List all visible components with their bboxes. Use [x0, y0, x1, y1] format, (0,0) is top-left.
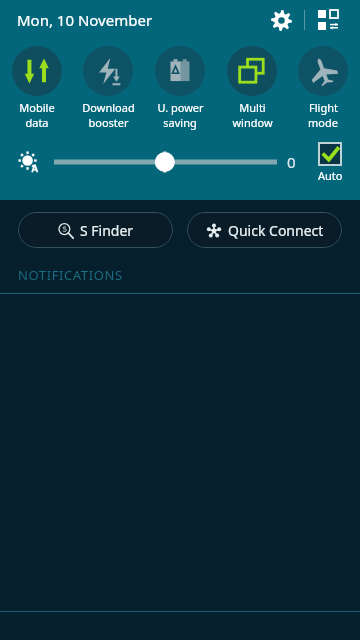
button[interactable]: Multi — [217, 44, 287, 130]
staticText: Mobile — [19, 100, 55, 115]
button[interactable]: U. power — [145, 44, 215, 130]
staticText: window — [232, 115, 273, 130]
button[interactable]: Download — [73, 44, 143, 130]
staticText: Flight — [309, 100, 338, 115]
button[interactable]: S Finder — [18, 212, 173, 248]
staticText: Download — [82, 100, 135, 115]
staticText: U. power — [157, 100, 204, 115]
staticText: Multi — [239, 100, 266, 115]
staticText: saving — [163, 115, 197, 130]
staticText: Quick Connect — [228, 221, 324, 240]
staticText: 0 — [287, 152, 296, 172]
button[interactable]: Mobile — [2, 44, 72, 130]
button[interactable]: Flight — [288, 44, 358, 130]
staticText: NOTIFICATIONS — [18, 266, 123, 284]
button[interactable]: Quick Connect — [187, 212, 342, 248]
staticText: S Finder — [80, 221, 134, 240]
button[interactable]: Settings — [263, 2, 299, 38]
staticText: mode — [308, 115, 338, 130]
staticText: data — [25, 115, 49, 130]
button[interactable]: Auto — [308, 142, 352, 183]
staticText: Auto — [318, 168, 343, 183]
button[interactable]: Auto brightness — [12, 145, 46, 179]
button[interactable]: Edit quick settings — [310, 2, 346, 38]
button[interactable]: Brightness slider — [54, 142, 277, 182]
staticText: Mon, 10 November — [17, 10, 153, 30]
staticText: booster — [88, 115, 129, 130]
